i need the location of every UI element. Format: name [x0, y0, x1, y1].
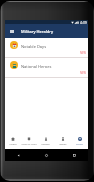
- staticText: 4:39: [80, 20, 87, 24]
- button[interactable]: Ranks: [54, 134, 71, 149]
- staticText: Ranks: [59, 142, 67, 145]
- staticText: Notable Days: [21, 44, 47, 49]
- button[interactable]: Back: [5, 149, 32, 161]
- staticText: Military Heraldry: [21, 29, 54, 34]
- button[interactable]: Open navigation menu: [5, 24, 19, 38]
- button[interactable]: Other: [71, 134, 88, 149]
- button[interactable]: Medals: [37, 134, 54, 149]
- button[interactable]: Home: [5, 134, 21, 149]
- button[interactable]: National Heroes: [5, 58, 88, 78]
- button[interactable]: Notable Days: [5, 38, 88, 58]
- staticText: NEW: [80, 71, 86, 75]
- staticText: Medals: [41, 142, 50, 145]
- button[interactable]: Recent apps: [60, 149, 88, 161]
- button[interactable]: Coat of Arms: [21, 134, 37, 149]
- staticText: Home: [9, 142, 17, 145]
- button[interactable]: Home: [32, 149, 60, 161]
- staticText: National Heroes: [21, 64, 52, 69]
- staticText: Other: [76, 142, 83, 145]
- staticText: Coat of Arms: [21, 142, 37, 145]
- staticText: NEW: [80, 51, 86, 55]
